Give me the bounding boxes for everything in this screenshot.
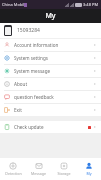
staticText: Exit xyxy=(14,107,93,113)
staticText: About xyxy=(14,81,93,87)
staticText: Message xyxy=(31,171,46,176)
button[interactable]: System settings xyxy=(0,52,101,64)
button[interactable]: question feedback xyxy=(0,91,101,103)
staticText: System settings xyxy=(14,55,93,61)
button[interactable]: 15093284 xyxy=(0,23,101,38)
staticText: Account information xyxy=(14,42,93,48)
button[interactable]: About xyxy=(0,78,101,90)
staticText: China Mobile xyxy=(2,2,27,7)
button[interactable]: Account information xyxy=(0,39,101,51)
staticText: System message xyxy=(14,68,93,74)
button[interactable]: Check update xyxy=(0,121,101,133)
staticText: 15093284 xyxy=(17,27,40,34)
staticText: Check update xyxy=(14,124,88,130)
button[interactable]: System message xyxy=(0,65,101,77)
staticText: 3:48 PM xyxy=(83,2,99,7)
button[interactable]: Storage xyxy=(51,158,76,180)
staticText: Storage xyxy=(57,171,71,176)
staticText: My xyxy=(45,11,56,21)
staticText: question feedback xyxy=(14,94,93,100)
staticText: Detection xyxy=(5,171,22,176)
staticText: My xyxy=(86,171,92,176)
button[interactable]: My xyxy=(76,158,101,180)
button[interactable]: Exit xyxy=(0,104,101,116)
button[interactable]: Detection xyxy=(0,158,26,180)
button[interactable]: Message xyxy=(26,158,51,180)
